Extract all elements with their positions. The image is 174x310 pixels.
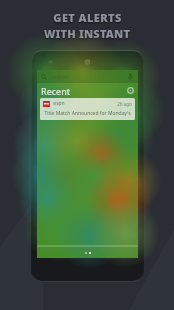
staticText: Title Match Announced for Monday's RAW [43,110,132,117]
staticText: Recent [41,85,70,97]
button[interactable]: Search [37,70,138,83]
staticText: 2h ago [117,101,132,107]
staticText: Search [50,73,69,81]
staticText: espn [53,100,65,107]
staticText: GET ALERTS [53,10,122,25]
staticText: WITH INSTANT NOTIFICATIONS [0,26,174,41]
button[interactable]: espn [40,98,135,120]
button[interactable]: Settings [127,87,134,94]
